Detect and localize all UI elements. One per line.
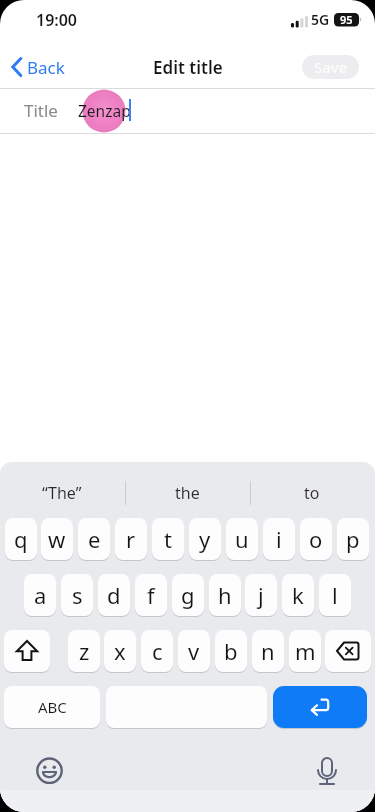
staticText: to — [304, 482, 320, 504]
staticText: d — [107, 580, 121, 610]
button[interactable] — [313, 754, 341, 788]
button[interactable]: l — [319, 574, 351, 616]
button[interactable]: ABC — [4, 686, 100, 728]
button[interactable]: Back — [6, 53, 72, 81]
button[interactable]: y — [189, 518, 221, 560]
button[interactable]: Save — [302, 55, 359, 79]
button[interactable]: w — [41, 518, 73, 560]
staticText: b — [224, 636, 238, 666]
staticText: Back — [27, 56, 65, 79]
staticText: 95 — [340, 12, 353, 27]
staticText: 19:00 — [36, 9, 78, 31]
button[interactable]: z — [68, 630, 100, 672]
staticText: m — [295, 636, 316, 666]
staticText: z — [79, 636, 90, 666]
button[interactable]: s — [61, 574, 93, 616]
staticText: Title — [24, 99, 58, 122]
staticText: “The” — [42, 482, 82, 504]
staticText: c — [152, 636, 163, 666]
staticText: e — [88, 524, 101, 554]
staticText: Zenzap — [78, 100, 131, 121]
staticText: i — [276, 524, 282, 554]
button[interactable]: e — [78, 518, 110, 560]
button[interactable]: x — [104, 630, 136, 672]
button[interactable]: v — [178, 630, 210, 672]
button[interactable]: m — [289, 630, 321, 672]
staticText: 5G — [311, 10, 330, 29]
button[interactable]: to — [262, 478, 362, 508]
button[interactable]: b — [215, 630, 247, 672]
button[interactable]: p — [337, 518, 369, 560]
button[interactable] — [35, 756, 65, 786]
staticText: Edit title — [153, 56, 223, 79]
staticText: o — [309, 524, 323, 554]
button[interactable]: k — [282, 574, 314, 616]
staticText: v — [188, 636, 200, 666]
staticText: the — [175, 482, 200, 504]
button[interactable]: n — [252, 630, 284, 672]
button[interactable]: Zenzap — [78, 88, 148, 132]
button[interactable]: q — [5, 518, 37, 560]
staticText: w — [48, 524, 66, 554]
button[interactable]: a — [24, 574, 56, 616]
staticText: s — [72, 580, 83, 610]
staticText: h — [218, 580, 232, 610]
button[interactable] — [325, 630, 371, 672]
staticText: y — [199, 524, 211, 554]
staticText: Save — [314, 57, 348, 77]
button[interactable]: d — [98, 574, 130, 616]
button[interactable]: u — [226, 518, 258, 560]
staticText: j — [258, 580, 264, 610]
button[interactable] — [273, 686, 367, 728]
button[interactable]: j — [245, 574, 277, 616]
staticText: l — [332, 580, 338, 610]
staticText: r — [126, 524, 136, 554]
staticText: a — [34, 580, 47, 610]
staticText: t — [164, 524, 172, 554]
staticText: k — [292, 580, 304, 610]
staticText: n — [261, 636, 275, 666]
button[interactable]: o — [300, 518, 332, 560]
staticText: x — [114, 636, 126, 666]
staticText: g — [181, 580, 195, 610]
button[interactable]: r — [115, 518, 147, 560]
button[interactable]: the — [137, 478, 237, 508]
button[interactable]: i — [263, 518, 295, 560]
button[interactable]: c — [141, 630, 173, 672]
staticText: f — [147, 580, 155, 610]
staticText: u — [235, 524, 249, 554]
button[interactable] — [4, 630, 50, 672]
staticText: ABC — [38, 697, 67, 717]
button[interactable]: h — [209, 574, 241, 616]
button[interactable]: “The” — [12, 478, 112, 508]
staticText: q — [14, 524, 28, 554]
button[interactable]: f — [135, 574, 167, 616]
button[interactable]: g — [172, 574, 204, 616]
staticText: p — [346, 524, 360, 554]
button[interactable]: t — [152, 518, 184, 560]
